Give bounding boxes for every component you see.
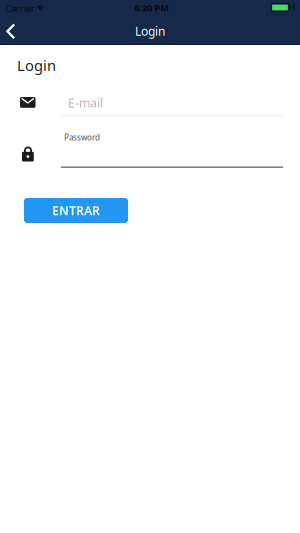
staticText: E-mail	[68, 95, 103, 111]
staticText: Password	[64, 132, 100, 143]
staticText: Carrier	[5, 2, 35, 14]
button[interactable]: ENTRAR	[24, 198, 128, 223]
staticText: Login	[17, 56, 56, 75]
staticText: Login	[135, 23, 165, 39]
staticText: ENTRAR	[52, 202, 100, 218]
staticText: 6:20 PM	[134, 1, 169, 14]
button[interactable]: Back	[0, 16, 29, 44]
